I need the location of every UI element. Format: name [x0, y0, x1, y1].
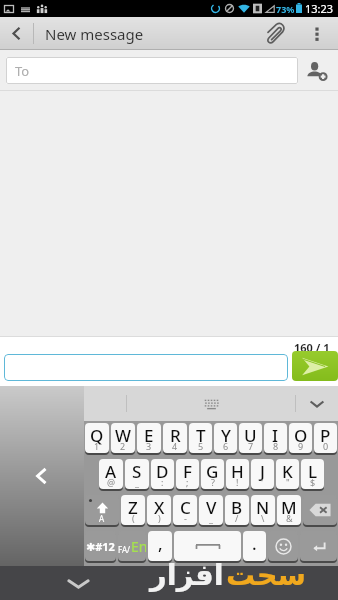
staticText: Q	[90, 424, 104, 447]
button[interactable]: C	[173, 496, 197, 526]
button[interactable]: Enter	[300, 532, 337, 562]
staticText: N	[256, 496, 270, 519]
button[interactable]: .	[243, 532, 266, 562]
button[interactable]: M	[277, 496, 301, 526]
button[interactable]: E	[137, 424, 161, 454]
button[interactable]: Backspace	[303, 496, 337, 526]
staticText: !	[236, 476, 239, 488]
staticText: H	[231, 460, 244, 483]
button[interactable]: Emoji	[268, 532, 298, 562]
button[interactable]: Send	[292, 351, 338, 381]
staticText: سحت	[226, 558, 307, 592]
button[interactable]: K	[276, 460, 299, 490]
staticText: 3	[146, 440, 152, 452]
staticText: V	[206, 496, 217, 519]
button[interactable]: S	[125, 460, 149, 490]
button[interactable]: Language	[118, 532, 146, 562]
staticText: O	[294, 424, 308, 447]
button[interactable]: ,	[148, 532, 172, 562]
button[interactable]: L	[301, 460, 324, 490]
button[interactable]: X	[147, 496, 171, 526]
button[interactable]: U	[239, 424, 262, 454]
staticText: 6	[223, 440, 229, 452]
staticText: 160 / 1	[294, 340, 330, 355]
button[interactable]: Shift	[85, 496, 119, 526]
button[interactable]: Space	[174, 532, 241, 562]
staticText: X	[154, 496, 165, 519]
staticText: ,	[158, 532, 163, 555]
staticText: "	[286, 476, 290, 488]
staticText: R	[170, 424, 181, 447]
staticText: _	[209, 512, 213, 524]
staticText: En	[131, 537, 146, 556]
staticText: I	[272, 424, 279, 447]
staticText: 5	[198, 440, 204, 452]
staticText: Y	[221, 424, 231, 447]
staticText: L	[308, 460, 318, 483]
staticText: 13:23	[305, 1, 334, 16]
staticText: To	[15, 62, 30, 80]
staticText: 1	[94, 440, 100, 452]
button[interactable]: Message input	[4, 354, 288, 381]
button[interactable]: D	[151, 460, 174, 490]
staticText: P	[320, 424, 331, 447]
staticText: F	[183, 460, 192, 483]
staticText: U	[244, 424, 257, 447]
button[interactable]: Collapse keyboard	[295, 386, 338, 421]
button[interactable]: Symbols	[85, 532, 116, 562]
button[interactable]: N	[251, 496, 275, 526]
button[interactable]: R	[163, 424, 187, 454]
button[interactable]: B	[225, 496, 249, 526]
staticText: &	[286, 512, 293, 524]
staticText: G	[206, 460, 219, 483]
button[interactable]: O	[289, 424, 312, 454]
button[interactable]: V	[199, 496, 223, 526]
staticText: 4	[172, 440, 178, 452]
staticText: (	[132, 512, 135, 524]
button[interactable]: More options	[296, 17, 338, 50]
button[interactable]: W	[111, 424, 135, 454]
button[interactable]: Add contact	[298, 50, 336, 91]
staticText: K	[282, 460, 293, 483]
button[interactable]: H	[226, 460, 249, 490]
button[interactable]: I	[264, 424, 287, 454]
staticText: 0	[323, 440, 329, 452]
staticText: New message	[45, 24, 144, 44]
button[interactable]: F	[176, 460, 199, 490]
staticText: افزار	[150, 558, 224, 592]
button[interactable]: Back	[0, 17, 33, 50]
staticText: C	[180, 496, 191, 519]
staticText: T	[196, 424, 206, 447]
staticText: :	[161, 476, 164, 488]
staticText: '	[261, 476, 264, 488]
staticText: FA/	[118, 544, 131, 555]
staticText: -	[184, 512, 187, 524]
staticText: W	[115, 424, 131, 447]
staticText: @	[107, 476, 116, 488]
button[interactable]: A	[99, 460, 123, 490]
staticText: E	[144, 424, 154, 447]
staticText: /	[235, 512, 239, 524]
button[interactable]: J	[251, 460, 274, 490]
button[interactable]: Q	[85, 424, 109, 454]
button[interactable]: G	[201, 460, 224, 490]
button[interactable]: Z	[121, 496, 145, 526]
staticText: S	[132, 460, 142, 483]
staticText: _	[135, 476, 139, 488]
staticText: 73%	[276, 3, 295, 15]
staticText: ;	[186, 476, 189, 488]
staticText: 9	[298, 440, 304, 452]
button[interactable]: To	[6, 57, 298, 84]
button[interactable]: Attach	[251, 17, 296, 50]
button[interactable]: T	[189, 424, 212, 454]
staticText: .	[252, 532, 257, 555]
button[interactable]: Previous	[0, 386, 84, 566]
staticText: D	[156, 460, 169, 483]
button[interactable]: P	[314, 424, 337, 454]
staticText: M	[281, 496, 297, 519]
staticText: B	[231, 496, 243, 519]
staticText: Z	[128, 496, 138, 519]
button[interactable]: Y	[214, 424, 237, 454]
button[interactable]: Hide keyboard	[61, 567, 95, 600]
staticText: A	[99, 513, 105, 524]
